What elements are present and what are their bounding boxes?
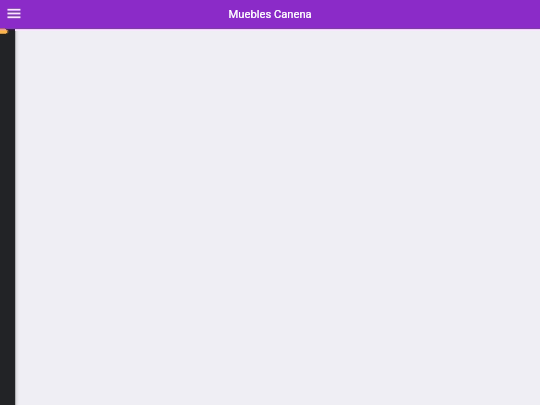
button[interactable]: Navigation drawer xyxy=(0,28,15,405)
button[interactable]: Open navigation menu xyxy=(0,0,27,28)
staticText: Muebles Canena xyxy=(229,8,313,21)
